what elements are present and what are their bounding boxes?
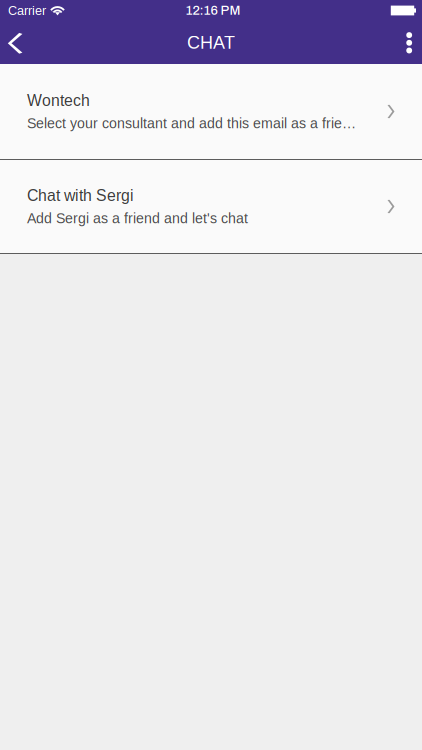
button[interactable]: More options bbox=[399, 21, 422, 64]
staticText: Carrier bbox=[8, 3, 46, 18]
staticText: CHAT bbox=[187, 32, 235, 52]
staticText: Wontech bbox=[27, 92, 90, 109]
staticText: Add Sergi as a friend and let's chat bbox=[27, 210, 248, 226]
button[interactable]: Wontech bbox=[0, 64, 422, 159]
button[interactable]: Chat with Sergi bbox=[0, 160, 422, 253]
button[interactable]: Back bbox=[0, 21, 39, 64]
staticText: 12:16 PM bbox=[185, 3, 240, 18]
staticText: Select your consultant and add this emai… bbox=[27, 115, 356, 131]
staticText: Chat with Sergi bbox=[27, 187, 134, 204]
